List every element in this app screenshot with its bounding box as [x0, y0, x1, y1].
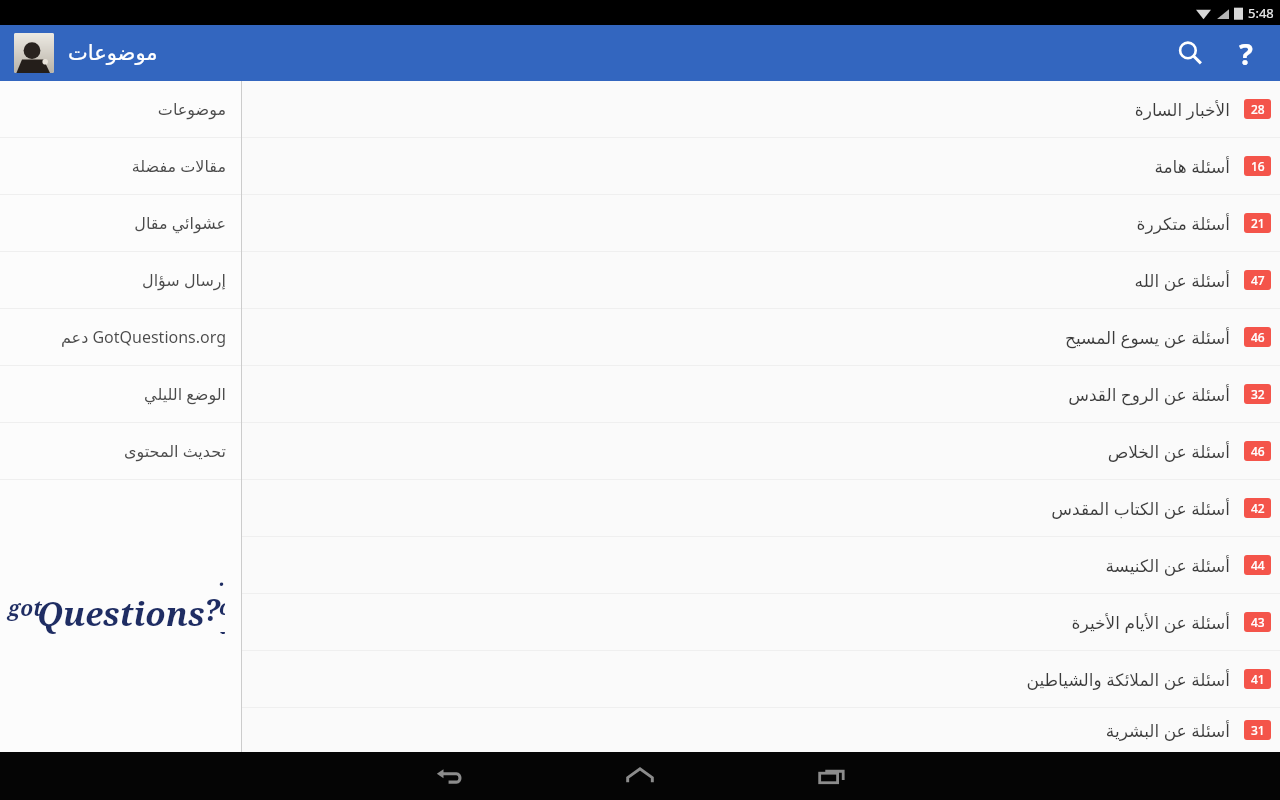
staticText: موضوعات [68, 41, 158, 65]
button[interactable]: Home [608, 754, 672, 798]
staticText: أسئلة هامة [1154, 155, 1230, 178]
staticText: إرسال سؤال [142, 269, 226, 291]
staticText: أسئلة عن البشرية [1105, 719, 1230, 742]
staticText: 43 [1251, 614, 1265, 630]
button[interactable]: Help [1218, 25, 1274, 81]
button[interactable]: أسئلة عن الروح القدس [242, 366, 1280, 422]
staticText: 46 [1251, 443, 1265, 459]
staticText: أسئلة عن الأيام الأخيرة [1071, 611, 1230, 634]
staticText: الوضع الليلي [144, 383, 226, 405]
staticText: أسئلة عن يسوع المسيح [1064, 326, 1230, 349]
staticText: 46 [1251, 329, 1265, 345]
staticText: 32 [1251, 386, 1265, 402]
staticText: أسئلة عن الكتاب المقدس [1051, 497, 1230, 520]
staticText: 47 [1251, 272, 1265, 288]
button[interactable]: الأخبار السارة [242, 81, 1280, 137]
staticText: أسئلة عن الخلاص [1107, 440, 1230, 463]
staticText: 31 [1251, 722, 1265, 738]
staticText: 28 [1251, 101, 1265, 117]
button[interactable]: أسئلة متكررة [242, 195, 1280, 251]
staticText: أسئلة عن الروح القدس [1068, 383, 1230, 406]
button[interactable]: أسئلة عن الملائكة والشياطين [242, 651, 1280, 707]
button[interactable]: Search [1162, 25, 1218, 81]
staticText: موضوعات [157, 100, 226, 119]
staticText: 44 [1251, 557, 1265, 573]
button[interactable]: أسئلة عن يسوع المسيح [242, 309, 1280, 365]
button[interactable]: أسئلة هامة [242, 138, 1280, 194]
button[interactable]: أسئلة عن الله [242, 252, 1280, 308]
staticText: ? [1239, 34, 1253, 73]
staticText: got [8, 594, 42, 623]
staticText: 5:48 [1248, 4, 1274, 22]
button[interactable]: Back [416, 754, 480, 798]
staticText: أسئلة عن الله [1134, 269, 1230, 292]
button[interactable]: مقالات مفضلة [0, 138, 241, 194]
button[interactable]: App icon [14, 33, 54, 73]
button[interactable]: الوضع الليلي [0, 366, 241, 422]
staticText: 42 [1251, 500, 1265, 516]
staticText: الأخبار السارة [1134, 98, 1230, 121]
staticText: أسئلة عن الكنيسة [1105, 554, 1230, 577]
button[interactable]: أسئلة عن الكتاب المقدس [242, 480, 1280, 536]
staticText: 41 [1251, 671, 1265, 687]
staticText: مقالات مفضلة [131, 155, 226, 177]
staticText: 16 [1251, 158, 1265, 174]
staticText: أسئلة عن الملائكة والشياطين [1026, 668, 1230, 691]
button[interactable]: أسئلة عن البشرية [242, 708, 1280, 752]
button[interactable]: عشوائي مقال [0, 195, 241, 251]
staticText: Questions [37, 591, 205, 636]
staticText: ? [204, 589, 221, 630]
button[interactable]: تحديث المحتوى [0, 423, 241, 479]
staticText: 21 [1251, 215, 1265, 231]
button[interactable]: دعم GotQuestions.org [0, 309, 241, 365]
staticText: دعم GotQuestions.org [60, 326, 226, 348]
staticText: أسئلة متكررة [1136, 212, 1230, 235]
staticText: .org [219, 564, 225, 634]
staticText: عشوائي مقال [134, 212, 226, 234]
button[interactable]: أسئلة عن الكنيسة [242, 537, 1280, 593]
button[interactable]: أسئلة عن الأيام الأخيرة [242, 594, 1280, 650]
button[interactable]: إرسال سؤال [0, 252, 241, 308]
button[interactable]: أسئلة عن الخلاص [242, 423, 1280, 479]
button[interactable]: موضوعات [0, 81, 241, 137]
staticText: تحديث المحتوى [123, 440, 226, 462]
button[interactable]: Recent apps [800, 754, 864, 798]
